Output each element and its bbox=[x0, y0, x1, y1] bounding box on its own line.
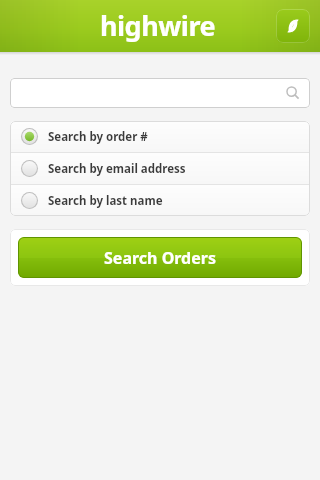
staticText: Search Orders bbox=[104, 247, 216, 269]
button[interactable] bbox=[10, 78, 310, 108]
button[interactable]: Refresh bbox=[276, 9, 310, 43]
button[interactable]: Search Orders bbox=[18, 237, 302, 278]
staticText: highwire bbox=[100, 7, 216, 44]
staticText: Search by email address bbox=[48, 161, 186, 177]
staticText: Search by last name bbox=[48, 193, 163, 209]
staticText: Search by order # bbox=[48, 129, 148, 145]
button[interactable]: Search by order # bbox=[10, 121, 310, 152]
button[interactable]: Search by email address bbox=[10, 153, 310, 184]
button[interactable]: Search by last name bbox=[10, 185, 310, 216]
